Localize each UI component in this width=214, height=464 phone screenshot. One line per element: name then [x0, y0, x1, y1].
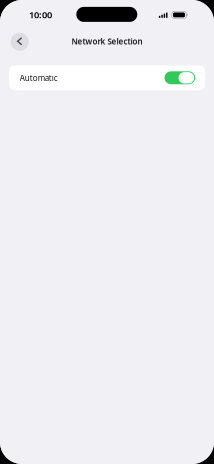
button[interactable]: Automatic [9, 65, 205, 90]
staticText: 10:00 [29, 8, 52, 21]
button[interactable]: Back [11, 33, 29, 51]
staticText: Automatic [20, 72, 58, 83]
staticText: Network Selection [71, 36, 142, 47]
